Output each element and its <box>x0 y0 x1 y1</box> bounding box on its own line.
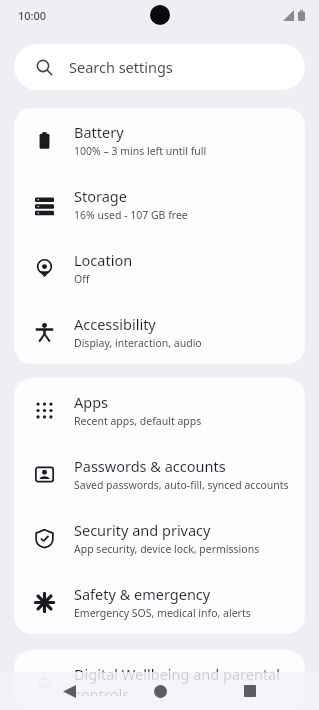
button[interactable]: Passwords & accounts <box>14 442 305 506</box>
button[interactable]: Home <box>138 672 182 710</box>
button[interactable]: Recents <box>228 672 272 710</box>
button[interactable]: Location <box>14 236 305 300</box>
staticText: Location <box>74 250 133 270</box>
button[interactable]: Security and privacy <box>14 506 305 570</box>
staticText: Battery <box>74 122 124 142</box>
button[interactable]: Back <box>47 672 91 710</box>
staticText: Storage <box>74 186 127 206</box>
button[interactable]: Storage <box>14 172 305 236</box>
staticText: Security and privacy <box>74 520 211 540</box>
staticText: 10:00 <box>18 8 47 23</box>
button[interactable]: Apps <box>14 378 305 442</box>
staticText: Digital Wellbeing and parental controls <box>74 664 289 696</box>
button[interactable]: Safety & emergency <box>14 570 305 634</box>
staticText: Safety & emergency <box>74 584 211 604</box>
staticText: Display, interaction, audio <box>74 336 202 350</box>
staticText: Apps <box>74 392 109 412</box>
button[interactable]: Digital Wellbeing and parental controls <box>14 650 305 710</box>
staticText: Search settings <box>69 57 173 77</box>
staticText: Passwords & accounts <box>74 456 226 476</box>
staticText: Accessibility <box>74 314 156 334</box>
staticText: App security, device lock, permissions <box>74 542 260 556</box>
button[interactable]: Search settings <box>14 44 305 90</box>
staticText: 16% used - 107 GB free <box>74 208 188 222</box>
staticText: Saved passwords, auto-fill, synced accou… <box>74 478 289 492</box>
button[interactable]: Accessibility <box>14 300 305 364</box>
staticText: Emergency SOS, medical info, alerts <box>74 606 251 620</box>
staticText: 100% – 3 mins left until full <box>74 144 207 158</box>
staticText: Recent apps, default apps <box>74 414 202 428</box>
button[interactable]: Battery <box>14 108 305 172</box>
staticText: Off <box>74 272 90 286</box>
